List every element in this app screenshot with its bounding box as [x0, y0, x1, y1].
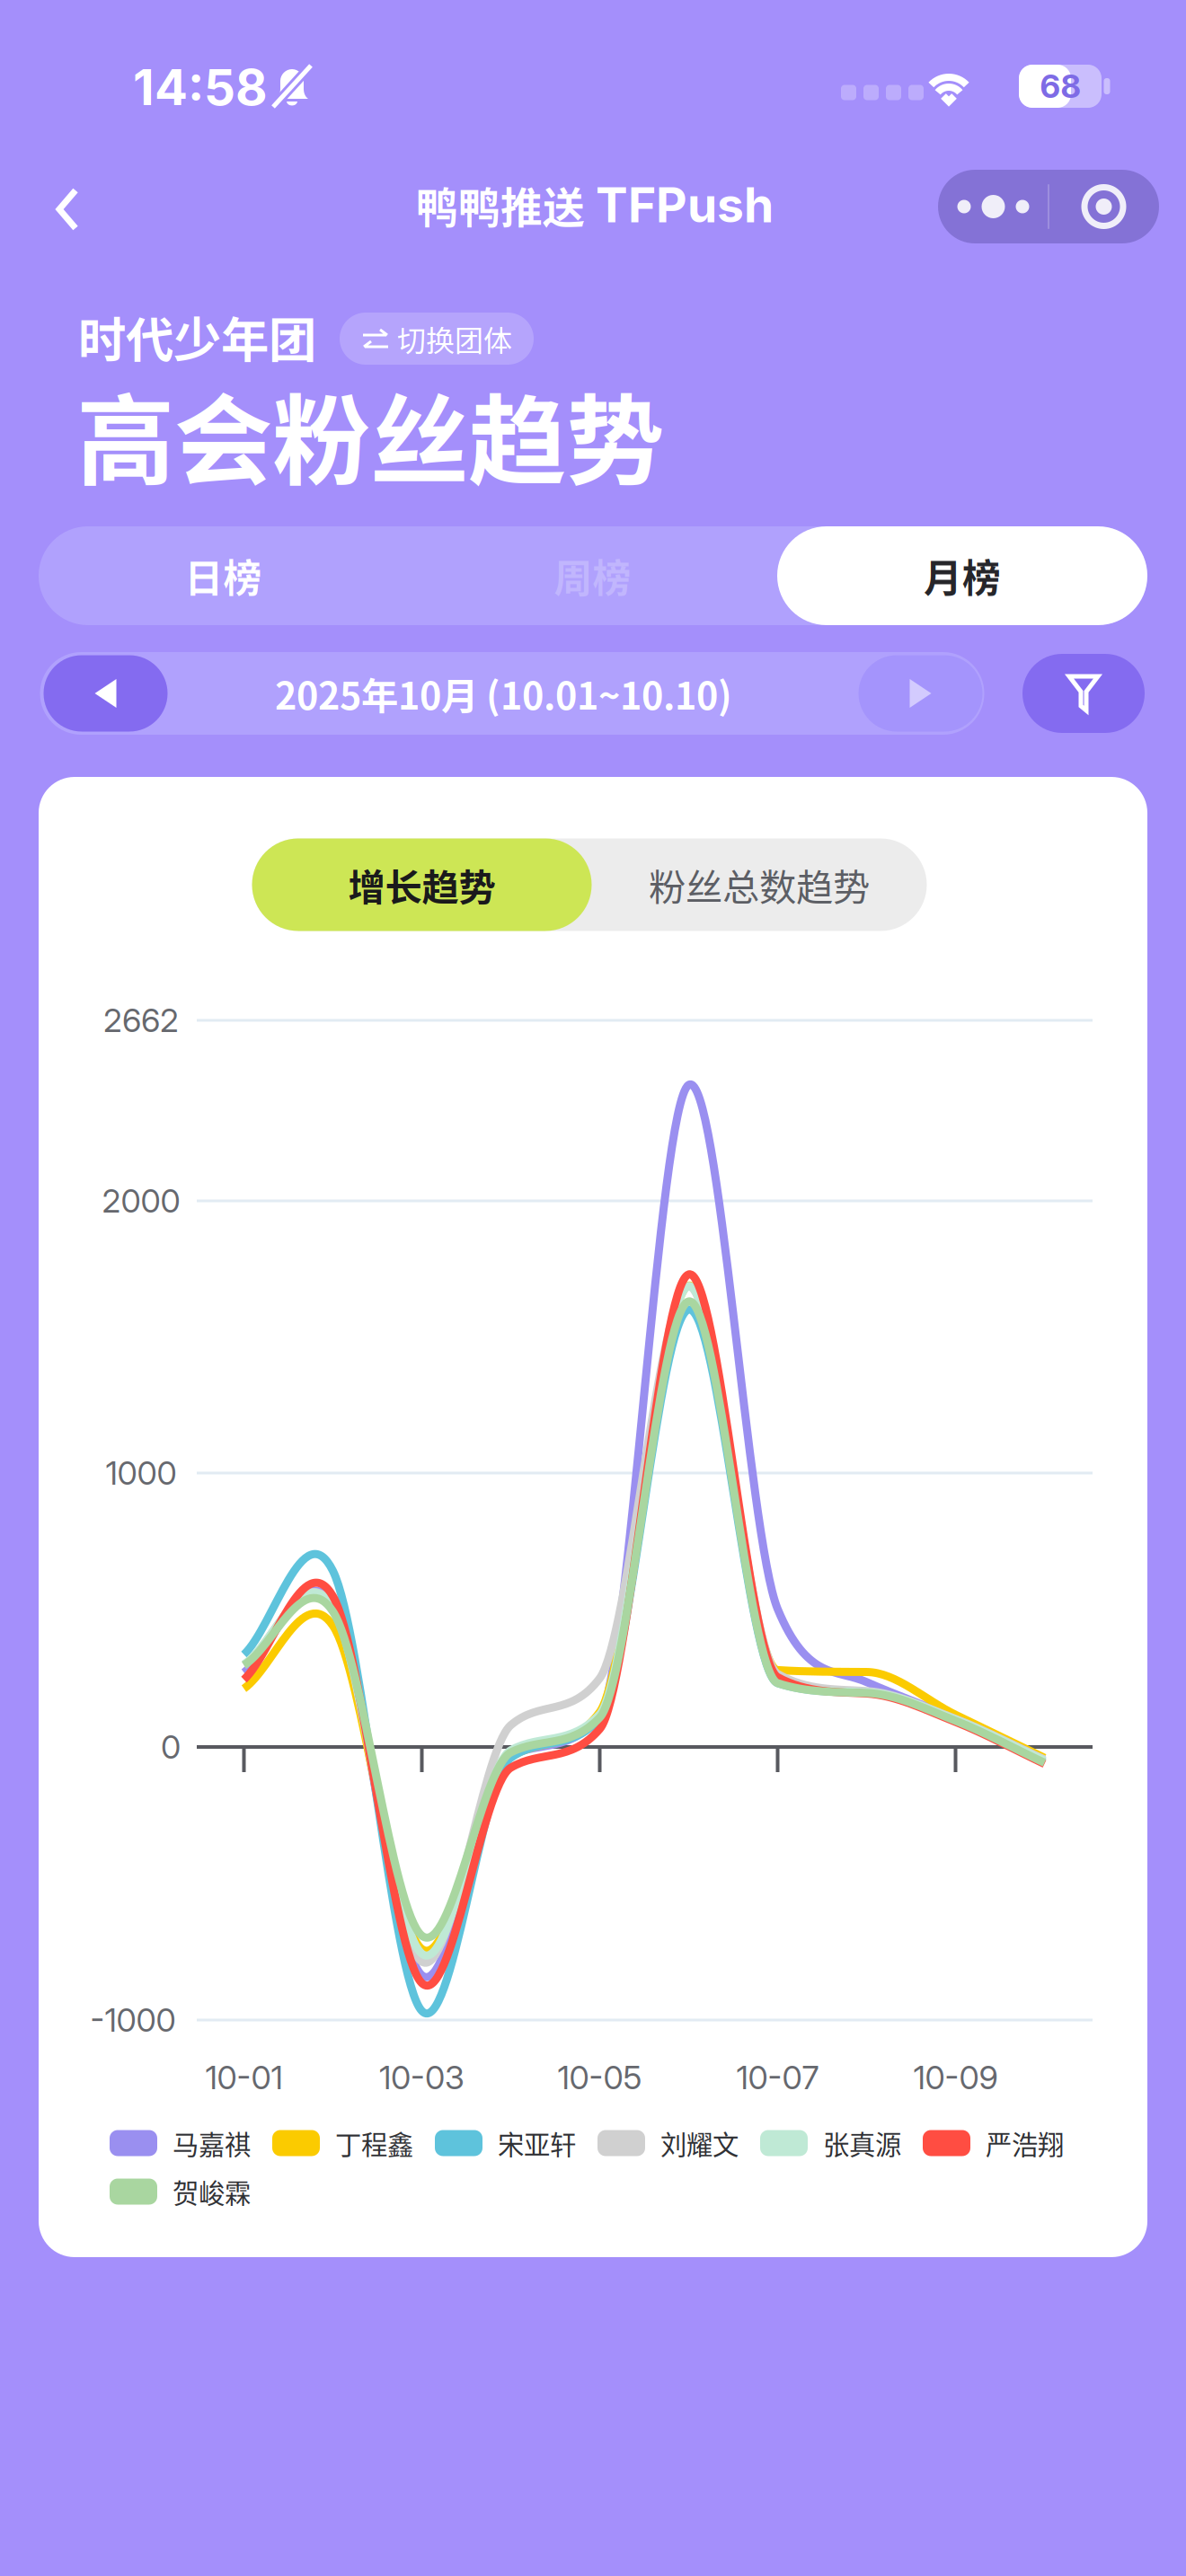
staticText: 宋亚轩 [498, 2124, 576, 2162]
button[interactable]: 切换团体 [340, 313, 534, 365]
staticText: 14:58 [133, 57, 268, 117]
staticText: TFPush [596, 176, 774, 234]
staticText: 时代少年团 [78, 302, 316, 371]
staticText: 粉丝总数趋势 [649, 858, 870, 912]
staticText: 月榜 [924, 548, 1001, 603]
staticText: 张真源 [823, 2124, 901, 2162]
staticText: 周榜 [554, 548, 631, 603]
staticText: 68 [1040, 67, 1080, 106]
staticText: 刘耀文 [660, 2124, 739, 2162]
button[interactable]: 筛选 [1022, 654, 1145, 733]
button[interactable]: 更多 [938, 170, 1049, 243]
staticText: 10-01 [205, 2058, 283, 2097]
button[interactable]: 下一月 [859, 655, 982, 732]
button[interactable]: 关闭 [1049, 170, 1159, 243]
staticText: 2000 [102, 1181, 180, 1220]
staticText: 1000 [106, 1453, 177, 1493]
staticText: 0 [161, 1727, 181, 1767]
button[interactable]: 粉丝总数趋势 [592, 838, 927, 931]
button[interactable]: 返回 [24, 169, 111, 250]
staticText: 2662 [103, 1001, 179, 1040]
staticText: 丁程鑫 [335, 2124, 413, 2162]
button[interactable]: 上一月 [44, 655, 168, 732]
staticText: 切换团体 [397, 318, 512, 359]
button[interactable]: 日榜 [39, 526, 408, 625]
staticText: 10-09 [913, 2058, 998, 2097]
staticText: 2025年10月 (10.01~10.10) [275, 667, 732, 720]
staticText: 马嘉祺 [173, 2124, 251, 2162]
button[interactable]: 增长趋势 [252, 838, 592, 931]
staticText: 10-05 [558, 2058, 642, 2097]
staticText: 10-03 [379, 2058, 465, 2097]
button[interactable]: 周榜 [408, 526, 777, 625]
staticText: 贺峻霖 [173, 2173, 251, 2211]
button[interactable]: 月榜 [777, 526, 1147, 625]
staticText: 日榜 [185, 548, 262, 603]
staticText: 10-07 [736, 2058, 819, 2097]
staticText: -1000 [90, 2000, 176, 2040]
staticText: 鸭鸭推送 [416, 174, 585, 235]
staticText: 增长趋势 [348, 858, 496, 912]
staticText: 严浩翔 [986, 2124, 1064, 2162]
staticText: 高会粉丝趋势 [76, 363, 664, 505]
